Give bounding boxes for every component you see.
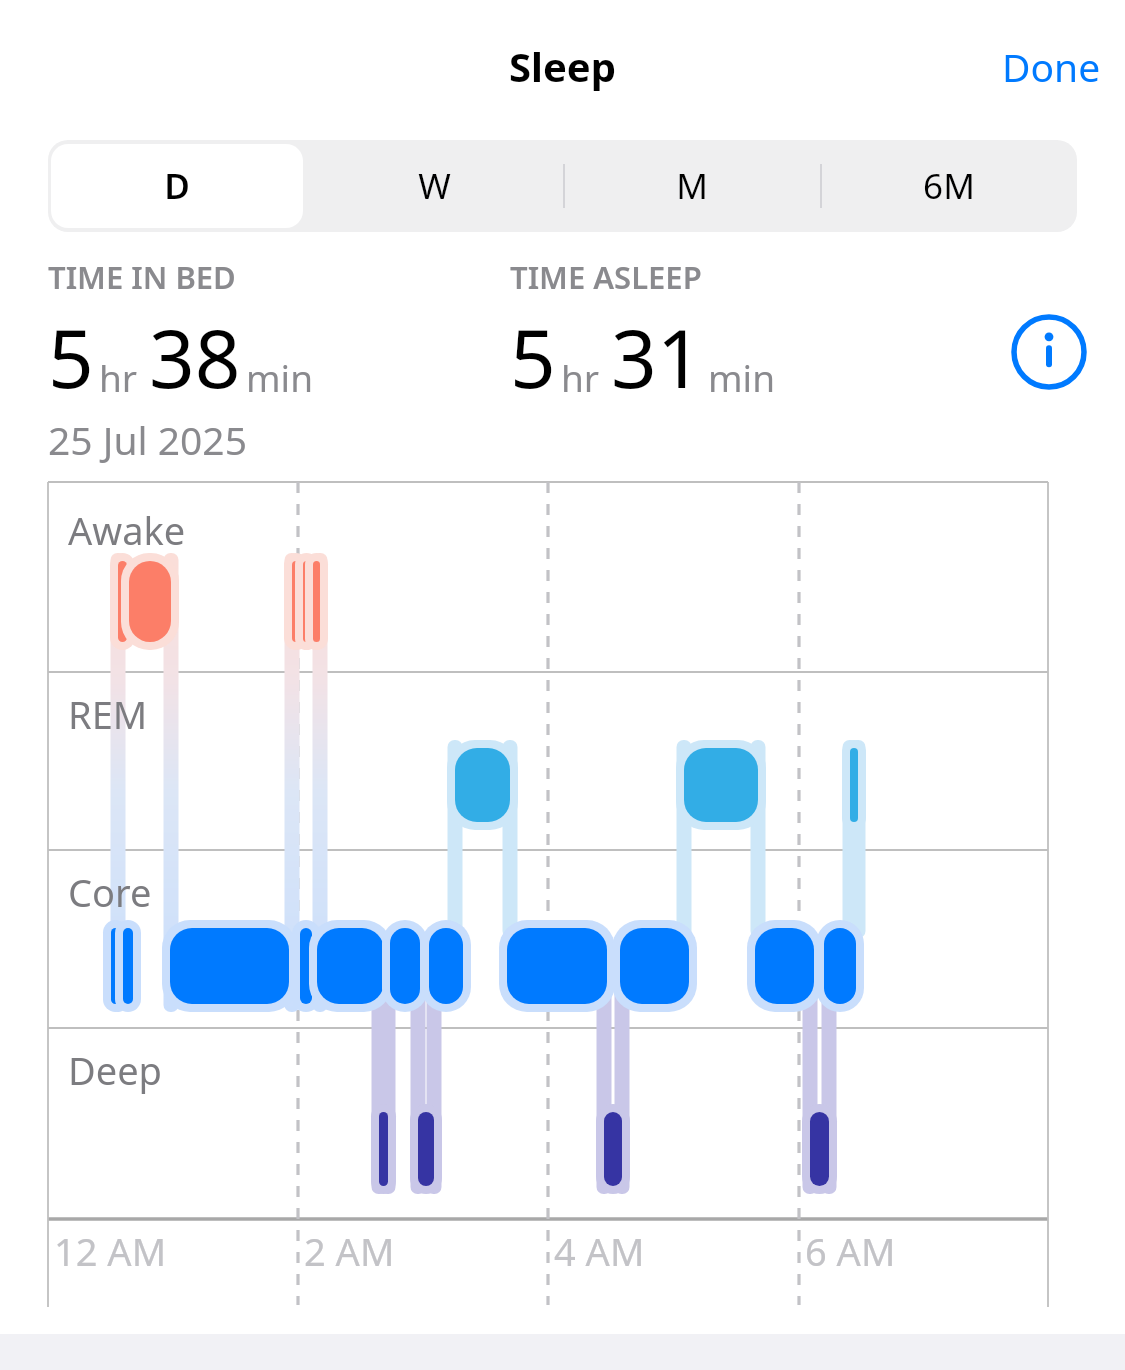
staticText: hr: [561, 352, 600, 402]
button[interactable]: D: [48, 140, 306, 232]
staticText: 25 Jul 2025: [48, 413, 247, 466]
staticText: Sleep: [509, 39, 616, 93]
staticText: Core: [68, 866, 152, 918]
staticText: 12 AM: [54, 1225, 167, 1277]
staticText: min: [246, 352, 314, 402]
staticText: TIME ASLEEP: [510, 256, 702, 298]
staticText: 38: [149, 302, 241, 411]
staticText: min: [708, 352, 776, 402]
button[interactable]: Done: [978, 28, 1125, 105]
staticText: 5: [48, 302, 94, 411]
staticText: 31: [611, 302, 703, 411]
staticText: W: [418, 162, 451, 210]
staticText: Deep: [68, 1044, 162, 1096]
staticText: 2 AM: [304, 1225, 395, 1277]
staticText: REM: [68, 688, 148, 740]
staticText: TIME IN BED: [48, 256, 236, 298]
staticText: Done: [1002, 40, 1101, 93]
staticText: Awake: [68, 504, 186, 556]
button[interactable]: About sleep stages: [1009, 312, 1089, 392]
staticText: 5: [510, 302, 556, 411]
staticText: D: [164, 162, 190, 210]
staticText: 6 AM: [805, 1225, 896, 1277]
staticText: 4 AM: [554, 1225, 645, 1277]
button[interactable]: W: [306, 140, 563, 232]
button[interactable]: 6M: [820, 140, 1077, 232]
staticText: M: [676, 162, 708, 210]
staticText: 6M: [923, 162, 975, 210]
staticText: hr: [99, 352, 138, 402]
button[interactable]: M: [563, 140, 820, 232]
